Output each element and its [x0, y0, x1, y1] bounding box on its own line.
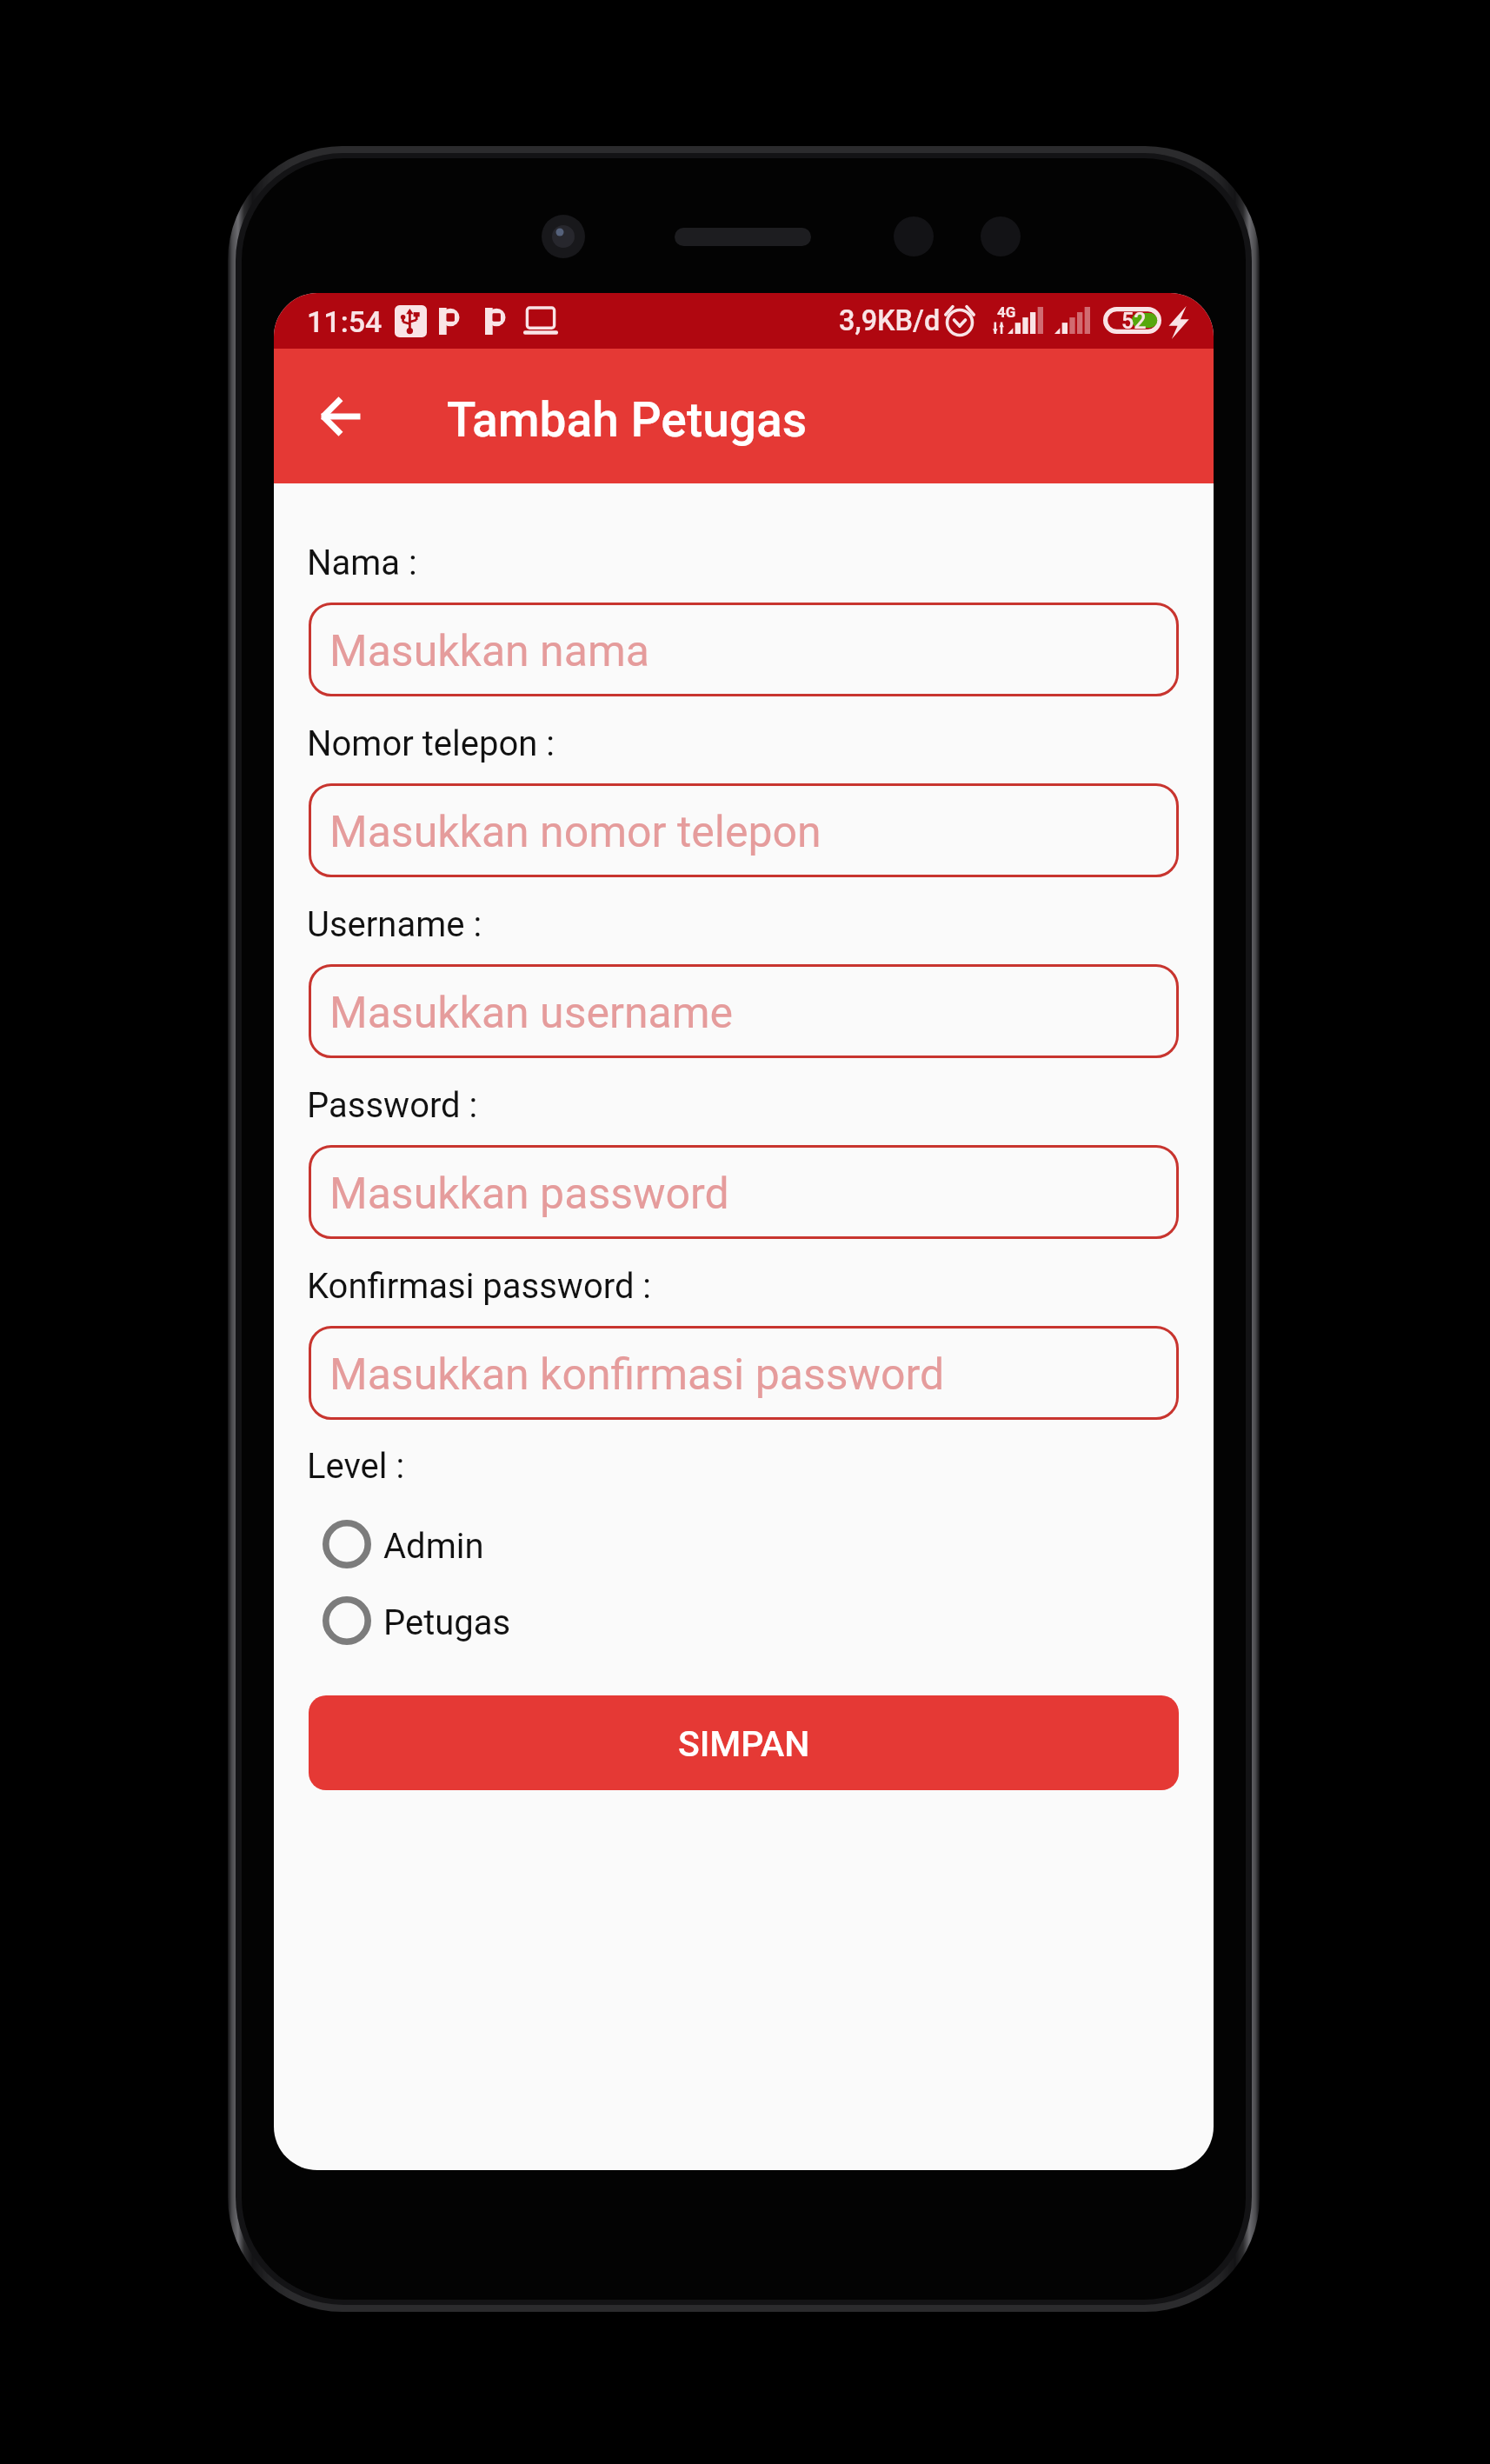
button[interactable]: Admin: [309, 1506, 1179, 1582]
button[interactable]: Masukkan password: [309, 1145, 1179, 1239]
button[interactable]: Masukkan username: [309, 964, 1179, 1058]
staticText: Masukkan nama: [329, 626, 649, 677]
staticText: Konfirmasi password :: [307, 1266, 652, 1307]
staticText: Username :: [307, 904, 482, 945]
staticText: Masukkan konfirmasi password: [329, 1349, 945, 1401]
staticText: 11:54: [307, 304, 382, 339]
staticText: Masukkan password: [329, 1169, 729, 1220]
button[interactable]: Masukkan nomor telepon: [309, 783, 1179, 877]
staticText: SIMPAN: [678, 1723, 810, 1765]
staticText: Masukkan nomor telepon: [329, 807, 821, 858]
staticText: Nama :: [307, 543, 417, 583]
button[interactable]: Masukkan nama: [309, 603, 1179, 696]
button[interactable]: Back: [301, 376, 381, 456]
staticText: Petugas: [383, 1602, 511, 1643]
staticText: Admin: [383, 1526, 484, 1567]
staticText: 3,9KB/d: [839, 304, 941, 337]
staticText: Level :: [307, 1446, 405, 1487]
staticText: 4G: [997, 303, 1016, 321]
button[interactable]: Masukkan konfirmasi password: [309, 1326, 1179, 1420]
staticText: Password :: [307, 1085, 478, 1126]
button[interactable]: Petugas: [309, 1582, 1179, 1659]
staticText: 52: [1121, 309, 1147, 334]
staticText: Nomor telepon :: [307, 723, 555, 764]
staticText: Masukkan username: [329, 988, 734, 1039]
staticText: Tambah Petugas: [447, 392, 808, 448]
button[interactable]: SIMPAN: [309, 1695, 1179, 1790]
